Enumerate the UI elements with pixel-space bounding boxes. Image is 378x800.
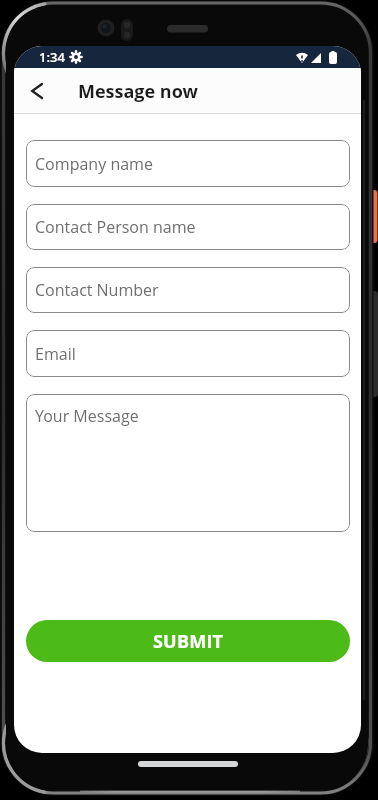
staticText: Contact Number <box>35 279 159 301</box>
staticText: 1:34 <box>39 48 65 66</box>
staticText: SUBMIT <box>153 629 224 654</box>
staticText: Message now <box>78 79 198 104</box>
staticText: Company name <box>35 153 153 175</box>
staticText: Contact Person name <box>35 216 196 238</box>
button[interactable]: Company name <box>26 140 350 187</box>
button[interactable]: Contact Person name <box>26 204 350 250</box>
staticText: Email <box>35 343 76 365</box>
button[interactable]: Contact Number <box>26 267 350 313</box>
button[interactable]: Your Message <box>26 394 350 532</box>
button[interactable]: Email <box>26 330 350 377</box>
staticText: Your Message <box>35 405 139 427</box>
button[interactable] <box>14 68 60 114</box>
button[interactable]: SUBMIT <box>26 620 350 662</box>
